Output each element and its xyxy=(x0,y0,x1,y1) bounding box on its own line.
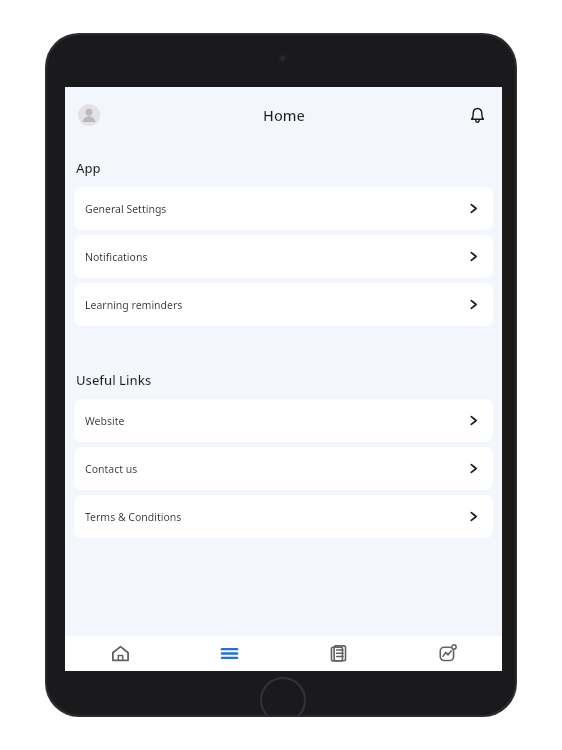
button[interactable]: Home xyxy=(65,636,175,671)
staticText: Learning reminders xyxy=(85,298,183,312)
button[interactable]: Profile xyxy=(78,104,100,126)
button[interactable]: Documents xyxy=(284,636,393,671)
button[interactable]: Notifications xyxy=(74,235,493,278)
button[interactable]: Contact us xyxy=(74,447,493,490)
button[interactable]: Menu xyxy=(175,636,284,671)
button[interactable]: Website xyxy=(74,399,493,442)
staticText: Website xyxy=(85,414,125,428)
staticText: App xyxy=(76,159,101,177)
staticText: Useful Links xyxy=(76,371,152,389)
button[interactable]: Reports xyxy=(393,636,502,671)
button[interactable]: General Settings xyxy=(74,187,493,230)
button[interactable]: Notifications xyxy=(464,102,490,128)
staticText: Home xyxy=(263,105,305,125)
button[interactable]: Terms & Conditions xyxy=(74,495,493,538)
staticText: Contact us xyxy=(85,462,138,476)
staticText: Notifications xyxy=(85,250,148,264)
button[interactable]: Learning reminders xyxy=(74,283,493,326)
staticText: General Settings xyxy=(85,202,167,216)
staticText: Terms & Conditions xyxy=(85,510,182,524)
